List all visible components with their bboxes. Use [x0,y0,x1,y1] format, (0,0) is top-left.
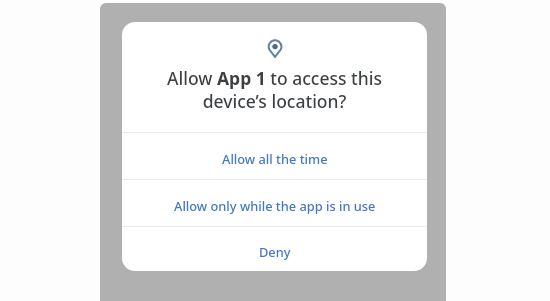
staticText: Allow App 1 to access this device’s loca… [122,66,427,114]
staticText: Deny [259,243,291,260]
staticText: Allow all the time [222,150,328,167]
button[interactable]: Deny [122,227,427,271]
button[interactable]: Allow only while the app is in use [122,180,427,226]
button[interactable]: Allow all the time [122,133,427,179]
staticText: Allow only while the app is in use [174,197,376,214]
